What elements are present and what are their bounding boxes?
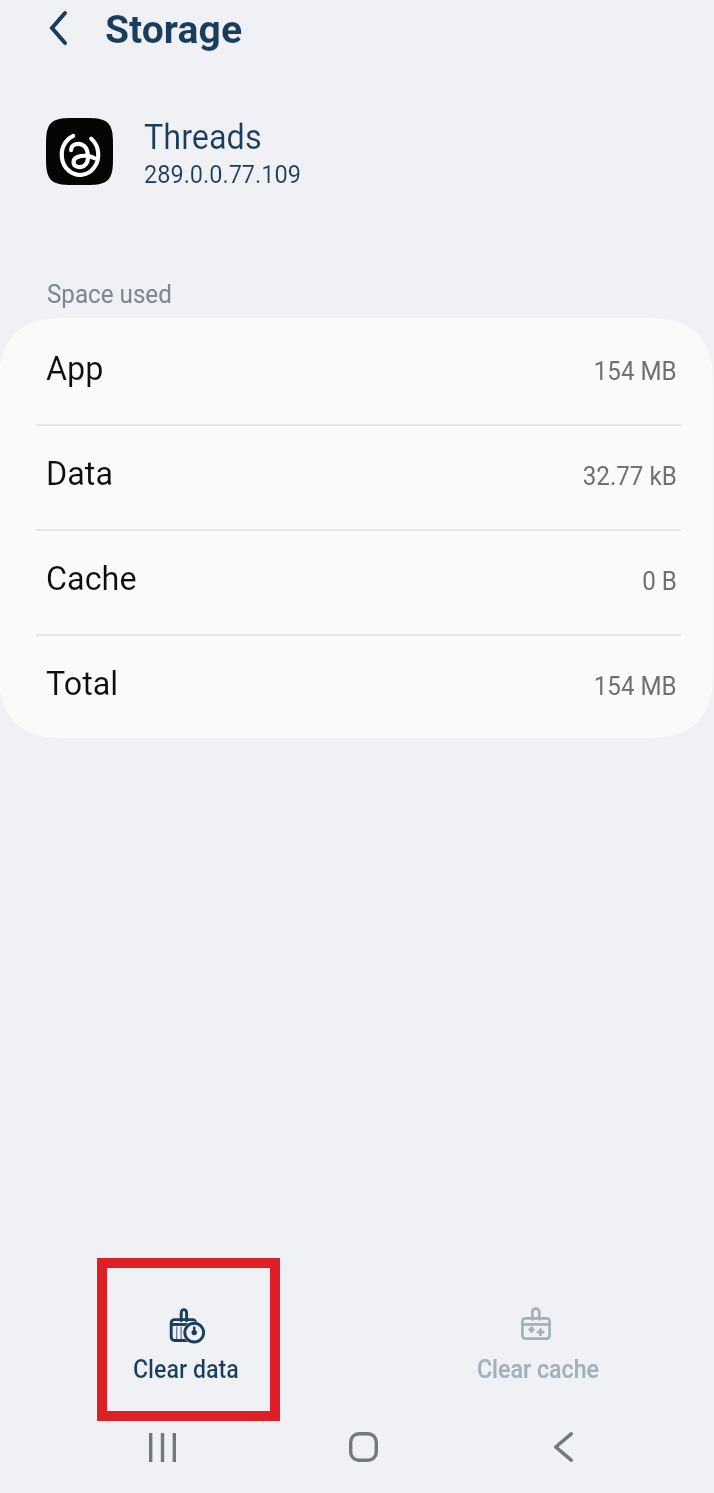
- staticText: Threads: [144, 116, 262, 157]
- staticText: Space used: [47, 280, 173, 310]
- staticText: Data: [46, 455, 114, 493]
- staticText: 32.77 kB: [583, 461, 677, 492]
- staticText: Total: [46, 665, 119, 703]
- staticText: Clear cache: [477, 1354, 599, 1384]
- staticText: 289.0.0.77.109: [144, 159, 301, 189]
- staticText: 0 B: [642, 566, 677, 597]
- button[interactable]: Back: [533, 1417, 593, 1477]
- staticText: Cache: [46, 560, 136, 598]
- button[interactable]: App: [0, 318, 713, 423]
- button[interactable]: Clear cache: [357, 1258, 714, 1420]
- button[interactable]: Cache: [0, 528, 713, 633]
- button[interactable]: Total: [0, 633, 713, 738]
- button[interactable]: Clear data: [0, 1258, 357, 1420]
- staticText: 154 MB: [594, 356, 677, 387]
- button[interactable]: Data: [0, 423, 713, 528]
- staticText: App: [46, 350, 104, 388]
- button[interactable]: Home: [333, 1417, 393, 1477]
- staticText: 154 MB: [594, 671, 677, 702]
- staticText: Clear data: [133, 1354, 239, 1384]
- staticText: Storage: [105, 7, 243, 52]
- button[interactable]: Recent apps: [132, 1417, 192, 1477]
- button[interactable]: Navigate up: [34, 5, 82, 51]
